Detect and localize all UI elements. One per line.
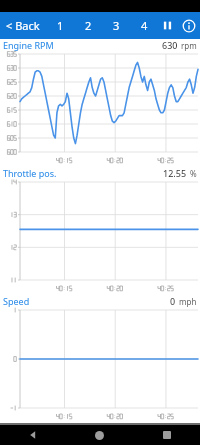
button[interactable]: Engine RPM xyxy=(0,39,200,167)
staticText: rpm xyxy=(181,40,197,51)
button[interactable]: Speed xyxy=(0,295,200,423)
staticText: Engine RPM xyxy=(3,39,54,51)
button[interactable]: 2 xyxy=(74,12,102,39)
button[interactable]: Home xyxy=(66,425,133,445)
button[interactable]: Pause xyxy=(158,12,177,39)
button[interactable]: < Back xyxy=(0,12,46,39)
staticText: 2 xyxy=(85,18,92,33)
button[interactable]: Recents xyxy=(133,425,200,445)
staticText: Throttle pos. xyxy=(3,167,57,179)
staticText: 4 xyxy=(141,18,148,33)
button[interactable]: 1 xyxy=(46,12,74,39)
staticText: Speed xyxy=(3,295,30,307)
button[interactable]: Info xyxy=(177,12,200,39)
staticText: 0 xyxy=(170,295,176,307)
staticText: mph xyxy=(179,296,197,307)
button[interactable]: 4 xyxy=(130,12,158,39)
staticText: % xyxy=(190,168,197,179)
staticText: 3 xyxy=(113,18,120,33)
button[interactable]: Throttle pos. xyxy=(0,167,200,295)
staticText: 12.55 xyxy=(163,167,187,179)
button[interactable]: Back xyxy=(0,425,66,445)
staticText: 1 xyxy=(57,18,64,33)
staticText: < Back xyxy=(6,18,40,33)
staticText: 630 xyxy=(162,39,178,51)
button[interactable]: 3 xyxy=(102,12,130,39)
